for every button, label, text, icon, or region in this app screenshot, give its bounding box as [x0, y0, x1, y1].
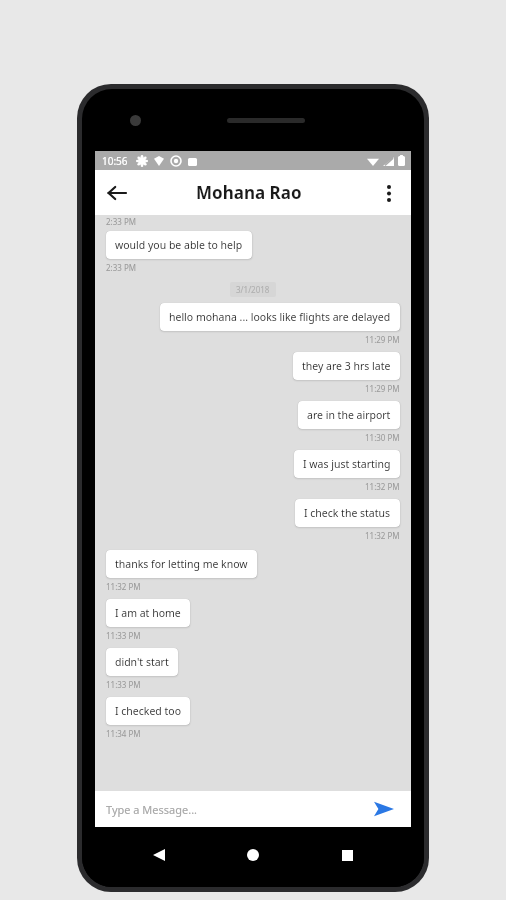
button[interactable]: I check the status: [295, 499, 400, 527]
button[interactable]: Home: [236, 838, 270, 872]
staticText: 11:30 PM: [365, 432, 400, 443]
staticText: 11:33 PM: [106, 630, 141, 641]
button[interactable]: didn't start: [106, 648, 178, 676]
button[interactable]: they are 3 hrs late: [293, 352, 400, 380]
staticText: are in the airport: [307, 408, 391, 422]
button[interactable]: I checked too: [106, 697, 190, 725]
staticText: 11:32 PM: [365, 481, 400, 492]
staticText: 2:33 PM: [106, 216, 137, 227]
button[interactable]: Back: [95, 171, 139, 215]
staticText: I was just starting: [303, 457, 391, 471]
staticText: I am at home: [115, 606, 181, 620]
staticText: I check the status: [304, 506, 391, 520]
button[interactable]: thanks for letting me know: [106, 550, 257, 578]
button[interactable]: Recents: [330, 838, 364, 872]
staticText: Mohana Rao: [196, 181, 302, 204]
staticText: would you be able to help: [115, 238, 243, 252]
staticText: 11:34 PM: [106, 728, 141, 739]
button[interactable]: More options: [367, 171, 411, 215]
button[interactable]: would you be able to help: [106, 231, 252, 259]
staticText: didn't start: [115, 655, 169, 669]
button[interactable]: hello mohana ... looks like flights are …: [160, 303, 400, 331]
button[interactable]: Back: [142, 838, 176, 872]
staticText: 11:32 PM: [106, 581, 141, 592]
staticText: I checked too: [115, 704, 181, 718]
staticText: hello mohana ... looks like flights are …: [169, 310, 391, 324]
button[interactable]: I am at home: [106, 599, 190, 627]
staticText: 2:33 PM: [106, 262, 137, 273]
staticText: Type a Message...: [106, 802, 198, 817]
staticText: 10:56: [102, 154, 128, 168]
staticText: they are 3 hrs late: [302, 359, 391, 373]
button[interactable]: I was just starting: [294, 450, 400, 478]
staticText: 11:29 PM: [365, 383, 400, 394]
staticText: 11:29 PM: [365, 334, 400, 345]
button[interactable]: Send: [368, 793, 400, 825]
staticText: 3/1/2018: [236, 284, 270, 295]
button[interactable]: are in the airport: [298, 401, 400, 429]
staticText: 11:33 PM: [106, 679, 141, 690]
button[interactable]: Type a Message...: [106, 791, 368, 827]
staticText: 11:32 PM: [365, 530, 400, 541]
staticText: thanks for letting me know: [115, 557, 248, 571]
